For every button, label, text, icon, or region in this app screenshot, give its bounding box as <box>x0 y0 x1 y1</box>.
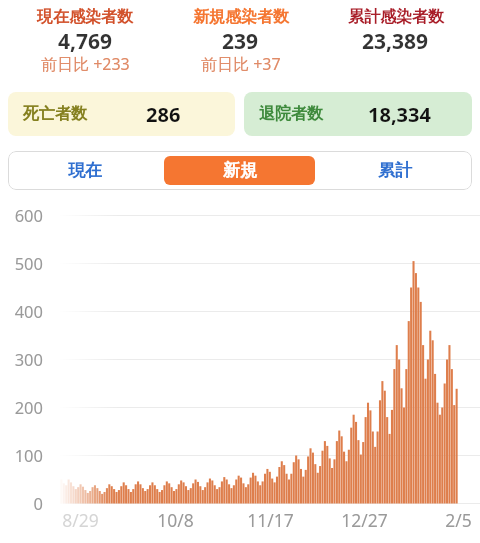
staticText: 新規 <box>223 160 257 181</box>
button[interactable]: 新規感染者数 <box>163 0 318 88</box>
staticText: 500 <box>14 252 43 274</box>
staticText: 死亡者数 <box>23 104 87 124</box>
button[interactable]: 現在感染者数 <box>7 0 163 88</box>
staticText: 239 <box>222 27 259 56</box>
staticText: 100 <box>14 444 43 466</box>
button[interactable]: 累計感染者数 <box>318 0 473 88</box>
staticText: 10/8 <box>157 508 194 532</box>
button[interactable]: 死亡者数 <box>8 92 235 136</box>
staticText: 前日比 +233 <box>41 53 130 75</box>
staticText: 現在 <box>68 160 102 181</box>
button[interactable]: 退院者数 <box>244 92 472 136</box>
staticText: 8/29 <box>62 508 99 532</box>
staticText: 286 <box>146 101 181 128</box>
staticText: 累計感染者数 <box>348 7 444 27</box>
staticText: 2/5 <box>445 508 472 532</box>
staticText: 200 <box>14 396 43 418</box>
staticText: 前日比 +37 <box>201 53 281 75</box>
staticText: 12/27 <box>341 508 388 532</box>
staticText: 600 <box>14 204 43 226</box>
button[interactable]: 累計 <box>319 156 470 185</box>
staticText: 300 <box>14 348 43 370</box>
staticText: 現在感染者数 <box>37 7 133 27</box>
staticText: 新規感染者数 <box>193 7 289 27</box>
staticText: 0 <box>33 492 43 514</box>
staticText: 400 <box>14 300 43 322</box>
staticText: 23,389 <box>362 27 429 56</box>
staticText: 4,769 <box>58 27 113 56</box>
staticText: 累計 <box>378 160 412 181</box>
staticText: 18,334 <box>368 101 431 128</box>
button[interactable]: 現在 <box>10 156 160 185</box>
staticText: 11/17 <box>247 508 294 532</box>
button[interactable]: 新規 <box>164 156 315 185</box>
staticText: 退院者数 <box>259 104 323 124</box>
